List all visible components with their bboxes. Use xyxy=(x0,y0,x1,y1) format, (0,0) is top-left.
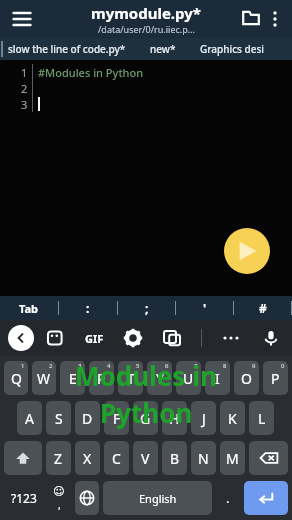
staticText: I xyxy=(215,369,220,388)
button[interactable]: ' xyxy=(176,296,233,320)
button[interactable]: slow the line of code.py* xyxy=(8,42,126,56)
staticText: F xyxy=(113,409,121,428)
staticText: 3 xyxy=(21,97,28,112)
button[interactable]: H xyxy=(162,401,187,435)
button[interactable]: : xyxy=(59,296,117,320)
button[interactable]: Back xyxy=(8,325,34,351)
button[interactable]: U xyxy=(176,361,201,395)
button[interactable]: . xyxy=(216,481,240,515)
staticText: #Modules in Python xyxy=(38,65,144,80)
button[interactable]: ?123 xyxy=(4,481,43,515)
staticText: E xyxy=(69,369,77,388)
staticText: 1 xyxy=(21,65,28,80)
staticText: 1 xyxy=(21,362,25,370)
button[interactable]: X xyxy=(75,441,100,475)
button[interactable]: J xyxy=(191,401,216,435)
button[interactable]: English xyxy=(103,481,212,515)
staticText: Y xyxy=(156,369,164,388)
staticText: R xyxy=(97,369,106,388)
button[interactable]: E xyxy=(60,361,85,395)
staticText: Z xyxy=(54,449,63,468)
staticText: P xyxy=(271,369,280,388)
button[interactable]: Stickers xyxy=(44,327,66,349)
button[interactable]: Z xyxy=(46,441,71,475)
button[interactable]: N xyxy=(191,441,216,475)
staticText: 0 xyxy=(281,362,285,370)
staticText: L xyxy=(258,409,266,428)
button[interactable]: O xyxy=(234,361,259,395)
staticText: S xyxy=(55,409,63,428)
button[interactable] xyxy=(4,441,42,475)
staticText: 4 xyxy=(107,362,111,370)
button[interactable]: A xyxy=(17,401,42,435)
button[interactable]: More options xyxy=(264,8,286,30)
button[interactable]: Graphics desi xyxy=(200,42,265,56)
button[interactable]: K xyxy=(220,401,245,435)
button[interactable]: Q xyxy=(4,361,28,395)
staticText: G xyxy=(140,409,151,428)
staticText: X xyxy=(83,449,92,468)
button[interactable]: S xyxy=(46,401,71,435)
staticText: 2 xyxy=(21,81,28,96)
staticText: N xyxy=(198,449,209,468)
staticText: 7 xyxy=(194,362,198,370)
staticText: 8 xyxy=(223,362,227,370)
button[interactable]: L xyxy=(249,401,274,435)
staticText: T xyxy=(127,369,135,388)
button[interactable]: G xyxy=(133,401,158,435)
staticText: 5 xyxy=(136,362,140,370)
staticText: J xyxy=(202,409,206,428)
staticText: M xyxy=(226,449,239,468)
staticText: V xyxy=(141,449,150,468)
button[interactable]: More xyxy=(221,328,241,348)
button[interactable]: Voice input xyxy=(260,327,282,349)
staticText: H xyxy=(169,409,180,428)
staticText: A xyxy=(25,409,34,428)
staticText: 6 xyxy=(165,362,169,370)
staticText: ' xyxy=(203,300,207,316)
staticText: ?123 xyxy=(11,490,37,506)
button[interactable]: F xyxy=(104,401,129,435)
staticText: D xyxy=(82,409,93,428)
staticText: U xyxy=(183,369,194,388)
button[interactable]: C xyxy=(104,441,129,475)
button[interactable]: Y xyxy=(147,361,172,395)
staticText: 9 xyxy=(252,362,256,370)
button[interactable]: GIF xyxy=(85,331,104,346)
staticText: B xyxy=(170,449,180,468)
staticText: , xyxy=(58,498,61,512)
button[interactable]: Settings xyxy=(123,328,143,348)
button[interactable]: ; xyxy=(118,296,175,320)
button[interactable]: Run xyxy=(224,228,270,274)
button[interactable] xyxy=(249,441,288,475)
button[interactable]: new* xyxy=(150,42,176,56)
button[interactable]: W xyxy=(32,361,56,395)
button[interactable]: M xyxy=(220,441,245,475)
button[interactable]: Tab xyxy=(0,296,58,320)
button[interactable]: I xyxy=(205,361,230,395)
staticText: . xyxy=(226,489,230,507)
staticText: ☺ xyxy=(53,485,65,498)
staticText: # xyxy=(259,300,267,316)
button[interactable]: D xyxy=(75,401,100,435)
staticText: /data/user/0/ru.iiec.p… xyxy=(98,23,195,35)
staticText: mymodule.py* xyxy=(91,3,201,23)
button[interactable]: T xyxy=(118,361,143,395)
button[interactable]: P xyxy=(263,361,288,395)
staticText: English xyxy=(139,491,177,506)
button[interactable]: ☺ xyxy=(47,481,71,515)
staticText: Q xyxy=(11,369,22,388)
button[interactable]: B xyxy=(162,441,187,475)
button[interactable]: V xyxy=(133,441,158,475)
button[interactable] xyxy=(244,481,288,515)
button[interactable]: Open folder xyxy=(238,6,264,32)
staticText: ; xyxy=(145,300,149,316)
button[interactable]: Translate xyxy=(162,328,182,348)
button[interactable] xyxy=(75,481,99,515)
button[interactable]: Menu xyxy=(8,5,36,33)
button[interactable]: R xyxy=(89,361,114,395)
staticText: 3 xyxy=(78,362,82,370)
button[interactable]: # xyxy=(234,296,291,320)
staticText: K xyxy=(228,409,237,428)
staticText: 2 xyxy=(49,362,53,370)
